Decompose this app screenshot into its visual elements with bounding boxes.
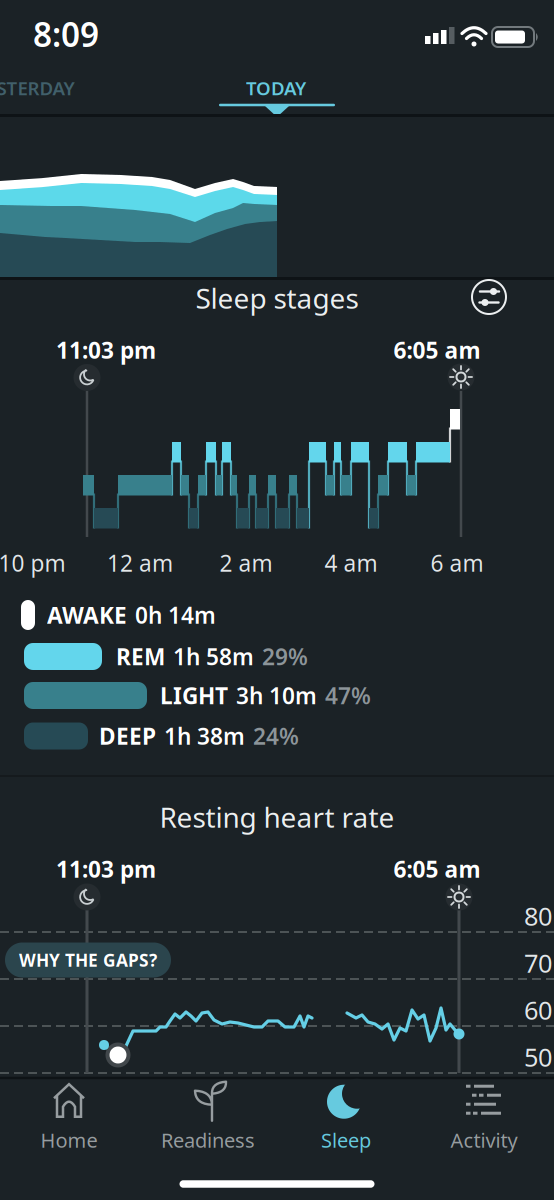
button[interactable]: Activity [424, 1086, 544, 1150]
staticText: 1h 58m [173, 641, 254, 671]
staticText: 4 am [324, 548, 377, 578]
staticText: 11:03 pm [56, 335, 156, 365]
staticText: 11:03 pm [56, 854, 156, 884]
button[interactable]: TODAY [201, 70, 351, 106]
staticText: 29% [262, 641, 308, 671]
button[interactable]: WHY THE GAPS? [5, 942, 171, 977]
staticText: 8:09 [33, 12, 99, 56]
staticText: 24% [253, 721, 299, 751]
staticText: DEEP [99, 721, 156, 751]
staticText: REM [116, 641, 165, 671]
button[interactable]: Chart settings [472, 280, 506, 314]
staticText: 6:05 am [393, 335, 480, 365]
staticText: YESTERDAY [0, 76, 74, 100]
button[interactable]: YESTERDAY [0, 70, 100, 106]
staticText: 6 am [430, 548, 483, 578]
staticText: 70 [524, 946, 552, 980]
staticText: Readiness [161, 1127, 255, 1153]
staticText: Home [40, 1127, 97, 1153]
staticText: 47% [325, 680, 371, 710]
staticText: WHY THE GAPS? [19, 948, 157, 971]
staticText: 0h 14m [135, 600, 216, 630]
staticText: Sleep stages [195, 279, 358, 317]
button[interactable]: Home [9, 1086, 129, 1150]
staticText: 1h 38m [164, 721, 245, 751]
staticText: Sleep [321, 1127, 371, 1153]
button[interactable]: Readiness [148, 1086, 268, 1150]
staticText: Activity [450, 1127, 517, 1153]
staticText: TODAY [246, 76, 306, 100]
staticText: 2 am [219, 548, 272, 578]
staticText: Resting heart rate [159, 798, 394, 836]
staticText: 10 pm [0, 548, 65, 578]
staticText: AWAKE [47, 600, 127, 630]
staticText: 50 [524, 1040, 552, 1074]
staticText: 60 [524, 993, 552, 1027]
button[interactable]: Sleep [286, 1086, 406, 1150]
staticText: 12 am [107, 548, 173, 578]
staticText: 80 [524, 899, 552, 933]
staticText: 3h 10m [236, 680, 317, 710]
staticText: 6:05 am [393, 854, 480, 884]
staticText: LIGHT [160, 680, 228, 710]
